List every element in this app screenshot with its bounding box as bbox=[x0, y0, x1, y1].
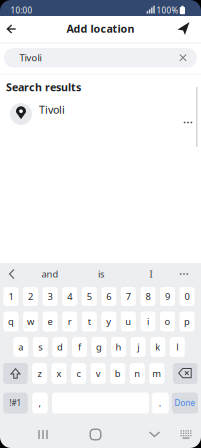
staticText: s bbox=[38, 341, 42, 353]
button[interactable]: 1 bbox=[3, 287, 18, 306]
staticText: z bbox=[37, 367, 41, 380]
staticText: m bbox=[152, 367, 161, 380]
staticText: v bbox=[96, 367, 101, 380]
button[interactable]: Collapse suggestions bbox=[8, 268, 16, 279]
button[interactable]: 8 bbox=[140, 287, 155, 306]
button[interactable]: Recent apps bbox=[36, 428, 50, 440]
button[interactable]: Backspace bbox=[173, 363, 197, 384]
staticText: e bbox=[48, 315, 53, 328]
staticText: w bbox=[27, 315, 34, 328]
staticText: Add location bbox=[66, 21, 134, 36]
staticText: , bbox=[38, 397, 41, 409]
staticText: and bbox=[41, 268, 58, 280]
button[interactable]: b bbox=[110, 363, 125, 384]
staticText: f bbox=[78, 341, 81, 353]
staticText: y bbox=[106, 315, 111, 328]
button[interactable]: , bbox=[32, 392, 48, 413]
staticText: h bbox=[116, 341, 122, 353]
button[interactable]: More suggestions bbox=[176, 268, 192, 280]
button[interactable]: Send location bbox=[176, 21, 191, 36]
button[interactable]: . bbox=[152, 392, 169, 413]
button[interactable]: u bbox=[121, 311, 136, 331]
button[interactable]: m bbox=[149, 363, 164, 384]
button[interactable]: Search text field bbox=[4, 48, 197, 67]
button[interactable]: Tivoli bbox=[0, 98, 201, 132]
button[interactable]: t bbox=[82, 311, 97, 331]
staticText: l bbox=[176, 341, 178, 353]
staticText: k bbox=[155, 341, 160, 353]
staticText: g bbox=[96, 341, 102, 353]
staticText: d bbox=[57, 341, 63, 353]
button[interactable]: I bbox=[131, 266, 171, 282]
button[interactable]: g bbox=[91, 337, 106, 357]
button[interactable]: and bbox=[30, 266, 70, 282]
button[interactable]: Clear search text bbox=[179, 53, 187, 62]
staticText: t bbox=[88, 315, 91, 328]
button[interactable]: a bbox=[13, 337, 28, 357]
staticText: Done bbox=[174, 398, 195, 408]
button[interactable]: Keyboard settings bbox=[179, 429, 193, 440]
staticText: u bbox=[125, 315, 131, 328]
staticText: 5 bbox=[87, 290, 92, 303]
button[interactable]: o bbox=[160, 311, 175, 331]
staticText: 10:00 bbox=[10, 5, 32, 16]
button[interactable]: 2 bbox=[23, 287, 38, 306]
button[interactable]: 5 bbox=[82, 287, 97, 306]
staticText: 4 bbox=[67, 290, 72, 303]
button[interactable]: j bbox=[131, 337, 146, 357]
button[interactable]: Done bbox=[172, 392, 198, 413]
staticText: 2 bbox=[28, 290, 33, 303]
button[interactable]: Back bbox=[1, 19, 21, 39]
button[interactable]: 7 bbox=[121, 287, 136, 306]
button[interactable]: Hide keyboard bbox=[149, 431, 160, 437]
button[interactable]: 4 bbox=[62, 287, 77, 306]
button[interactable]: 3 bbox=[43, 287, 58, 306]
staticText: c bbox=[77, 367, 81, 380]
button[interactable]: n bbox=[130, 363, 145, 384]
staticText: 8 bbox=[145, 290, 150, 303]
button[interactable]: x bbox=[52, 363, 67, 384]
staticText: n bbox=[134, 367, 140, 380]
button[interactable]: q bbox=[3, 311, 18, 331]
staticText: o bbox=[164, 315, 170, 328]
staticText: 9 bbox=[165, 290, 170, 303]
staticText: a bbox=[18, 341, 23, 353]
staticText: r bbox=[68, 315, 72, 328]
button[interactable]: l bbox=[170, 337, 185, 357]
button[interactable]: p bbox=[179, 311, 194, 331]
button[interactable]: c bbox=[71, 363, 86, 384]
button[interactable]: Shift bbox=[3, 363, 28, 384]
button[interactable]: Home bbox=[90, 429, 101, 440]
staticText: i bbox=[147, 315, 149, 328]
button[interactable]: k bbox=[150, 337, 165, 357]
staticText: j bbox=[137, 341, 139, 353]
staticText: is bbox=[98, 268, 104, 280]
button[interactable]: is bbox=[81, 266, 121, 282]
button[interactable]: h bbox=[111, 337, 126, 357]
button[interactable]: 6 bbox=[101, 287, 116, 306]
button[interactable]: e bbox=[43, 311, 58, 331]
staticText: b bbox=[115, 367, 121, 380]
staticText: Tivoli bbox=[39, 102, 65, 117]
button[interactable]: 0 bbox=[179, 287, 194, 306]
button[interactable]: i bbox=[140, 311, 155, 331]
staticText: q bbox=[8, 315, 14, 328]
button[interactable]: d bbox=[52, 337, 67, 357]
staticText: . bbox=[159, 397, 162, 409]
staticText: 0 bbox=[184, 290, 189, 303]
button[interactable]: f bbox=[72, 337, 87, 357]
button[interactable]: z bbox=[32, 363, 47, 384]
button[interactable]: s bbox=[33, 337, 48, 357]
button[interactable]: r bbox=[62, 311, 77, 331]
button[interactable]: y bbox=[101, 311, 116, 331]
button[interactable]: More options bbox=[180, 116, 196, 128]
staticText: 7 bbox=[126, 290, 131, 303]
button[interactable]: !#1 bbox=[3, 392, 28, 413]
staticText: 1 bbox=[8, 290, 13, 303]
staticText: I bbox=[149, 268, 152, 280]
button[interactable]: v bbox=[91, 363, 106, 384]
staticText: Tivoli bbox=[19, 51, 41, 64]
button[interactable]: 9 bbox=[160, 287, 175, 306]
button[interactable]: w bbox=[23, 311, 38, 331]
